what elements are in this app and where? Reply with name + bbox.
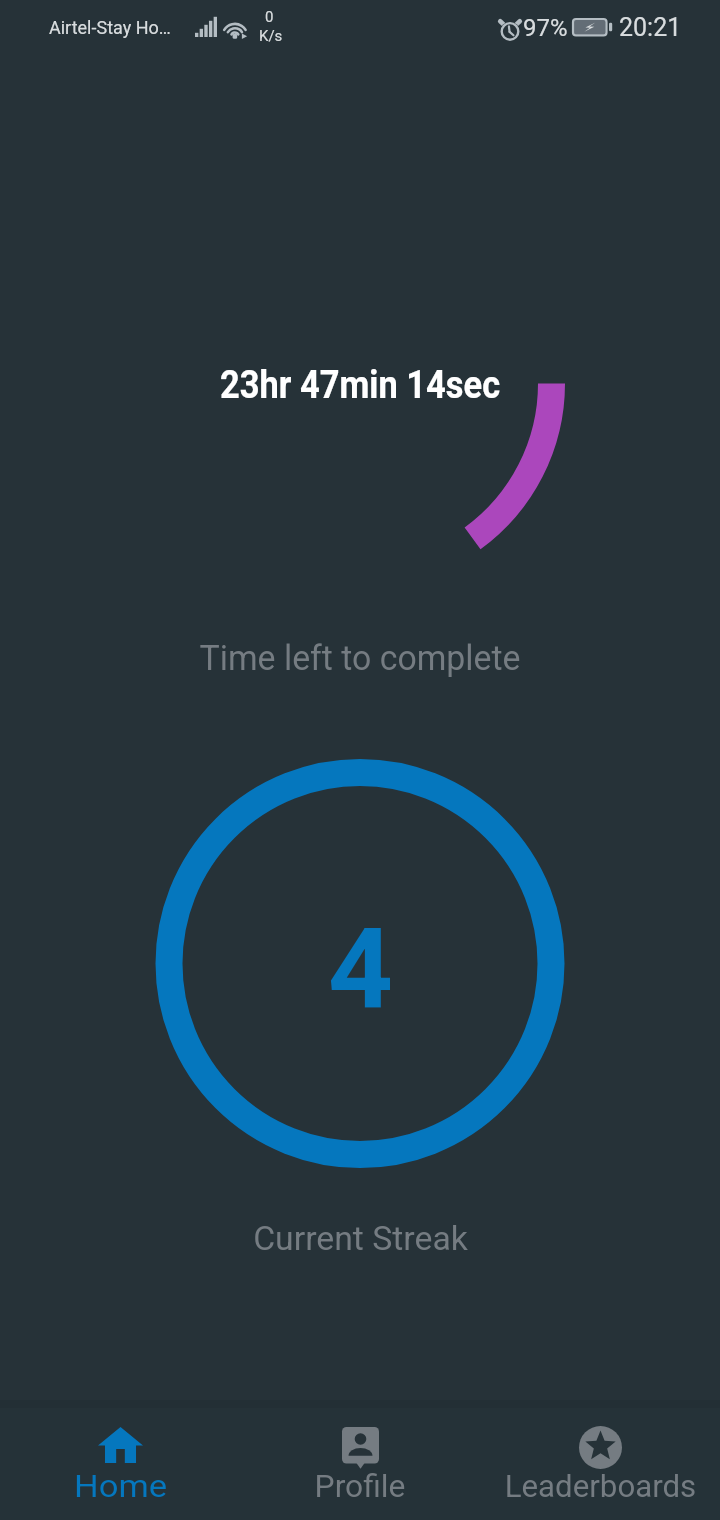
button[interactable]: Home	[0, 1400, 240, 1520]
staticText: 0	[265, 8, 274, 26]
other: Profile	[342, 1427, 379, 1469]
staticText: 20:21	[619, 13, 682, 42]
staticText: 97%	[523, 14, 568, 42]
staticText: Home	[73, 1467, 167, 1504]
button[interactable]: Leaderboards	[480, 1400, 720, 1520]
staticText: K/s	[259, 27, 283, 45]
staticText: Profile	[314, 1467, 406, 1504]
button[interactable]: Profile	[240, 1400, 480, 1520]
staticText: 4	[327, 903, 394, 1034]
other: Leaderboards	[579, 1426, 622, 1469]
staticText: Leaderboards	[504, 1467, 697, 1504]
staticText: 23hr 47min 14sec	[219, 362, 500, 407]
staticText: Airtel-Stay Ho…	[49, 17, 171, 38]
other: Home	[98, 1427, 143, 1463]
staticText: Current Streak	[253, 1218, 468, 1258]
staticText: Time left to complete	[199, 637, 520, 679]
